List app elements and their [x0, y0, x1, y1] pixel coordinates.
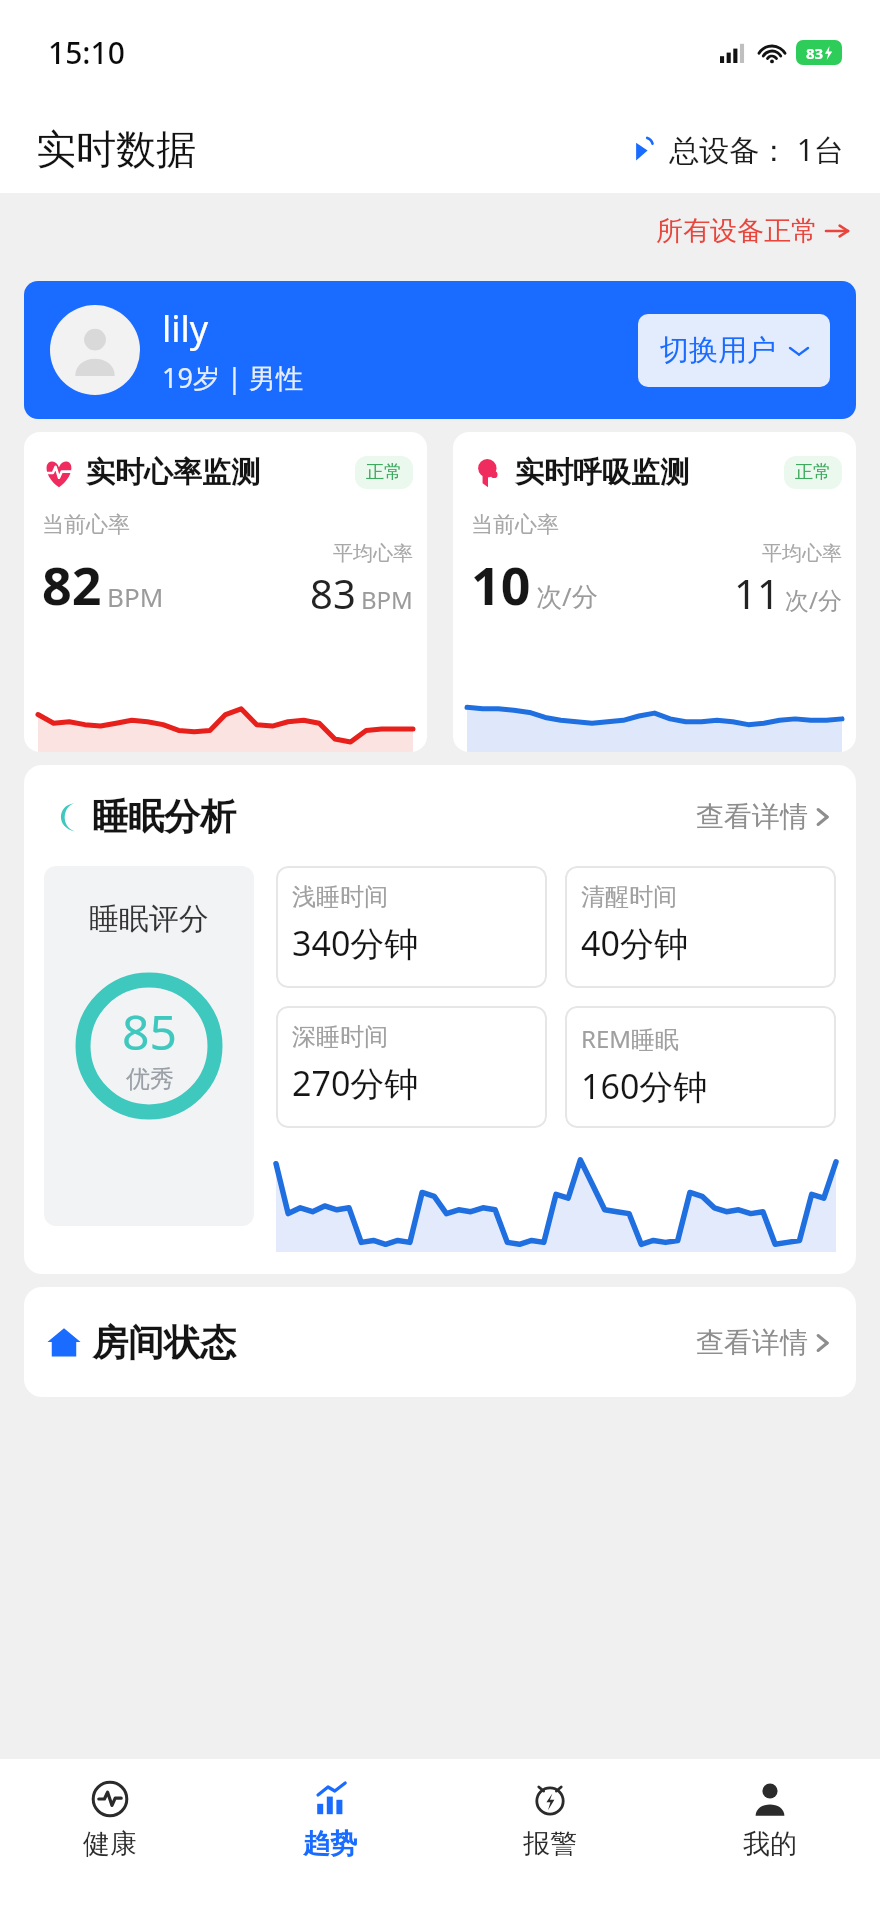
button[interactable]: 深睡时间: [276, 1006, 547, 1128]
staticText: 85: [122, 999, 177, 1064]
staticText: 160分钟: [581, 1063, 708, 1109]
staticText: lily: [162, 304, 209, 353]
staticText: 深睡时间: [292, 1022, 388, 1052]
staticText: 19岁 | 男性: [162, 359, 303, 396]
button[interactable]: 实时呼吸监测: [453, 432, 856, 752]
button[interactable]: 趋势: [220, 1759, 440, 1907]
staticText: 当前心率: [471, 511, 559, 539]
staticText: 次/分: [785, 583, 842, 616]
staticText: REM睡眠: [581, 1022, 680, 1055]
staticText: 实时心率监测: [86, 454, 260, 491]
staticText: 40分钟: [581, 920, 688, 966]
staticText: 总设备： 1台: [669, 129, 844, 170]
staticText: 83: [806, 43, 824, 63]
button[interactable]: lily: [24, 281, 856, 419]
staticText: 房间状态: [92, 1320, 236, 1365]
button[interactable]: 切换用户: [638, 314, 830, 387]
staticText: 查看详情: [696, 799, 808, 834]
staticText: 清醒时间: [581, 882, 677, 912]
button[interactable]: REM睡眠: [565, 1006, 836, 1128]
button[interactable]: 健康: [0, 1759, 220, 1907]
staticText: 次/分: [536, 578, 598, 614]
staticText: 正常: [366, 461, 402, 484]
staticText: 报警: [523, 1827, 577, 1861]
staticText: 82: [42, 549, 102, 620]
staticText: 平均心率: [333, 541, 413, 566]
staticText: 切换用户: [660, 332, 776, 369]
staticText: 实时数据: [36, 124, 196, 174]
button[interactable]: 睡眠分析: [24, 765, 856, 1274]
staticText: 平均心率: [762, 541, 842, 566]
button[interactable]: 我的: [660, 1759, 880, 1907]
staticText: 我的: [743, 1827, 797, 1861]
staticText: BPM: [361, 583, 413, 616]
button[interactable]: 查看详情: [690, 793, 836, 840]
staticText: 270分钟: [292, 1060, 419, 1106]
staticText: 睡眠评分: [89, 900, 209, 938]
staticText: 查看详情: [696, 1325, 808, 1360]
staticText: 所有设备正常: [656, 214, 818, 248]
staticText: 正常: [795, 461, 831, 484]
staticText: 优秀: [126, 1064, 174, 1094]
staticText: BPM: [107, 579, 164, 614]
staticText: 11: [734, 566, 780, 620]
button[interactable]: 查看详情: [690, 1319, 836, 1366]
button[interactable]: 房间状态: [24, 1287, 856, 1397]
button[interactable]: 所有设备正常: [648, 208, 856, 254]
staticText: 睡眠分析: [92, 794, 236, 839]
button[interactable]: 实时心率监测: [24, 432, 427, 752]
button[interactable]: 浅睡时间: [276, 866, 547, 988]
staticText: 10: [471, 549, 531, 620]
staticText: 15:10: [48, 32, 125, 73]
staticText: 健康: [83, 1827, 137, 1861]
staticText: 83: [310, 566, 356, 620]
staticText: 浅睡时间: [292, 882, 388, 912]
staticText: 当前心率: [42, 511, 130, 539]
staticText: 实时呼吸监测: [515, 454, 689, 491]
button[interactable]: 清醒时间: [565, 866, 836, 988]
staticText: 趋势: [303, 1827, 357, 1861]
staticText: 340分钟: [292, 920, 419, 966]
button[interactable]: 报警: [440, 1759, 660, 1907]
